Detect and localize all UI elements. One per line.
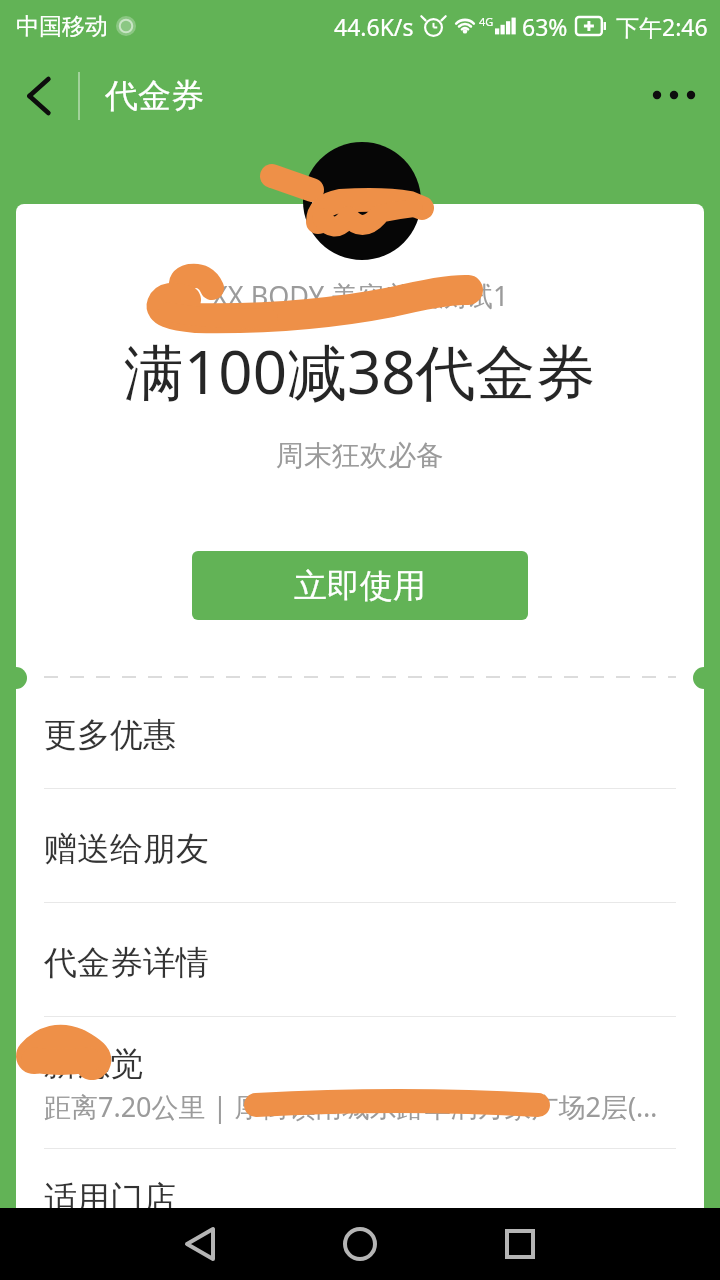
button[interactable]: 更多优惠 bbox=[16, 675, 704, 788]
staticText: 立即使用 bbox=[294, 565, 426, 607]
button[interactable]: 代金券详情 bbox=[16, 903, 704, 1016]
staticText: 赠送给朋友 bbox=[44, 828, 209, 870]
staticText: 代金券详情 bbox=[44, 942, 209, 984]
button[interactable]: Back bbox=[140, 1208, 260, 1280]
staticText: 周末狂欢必备 bbox=[276, 438, 444, 473]
button[interactable]: 赠送给朋友 bbox=[16, 789, 704, 902]
button[interactable]: More options bbox=[628, 52, 720, 140]
staticText: M bbox=[310, 193, 331, 223]
staticText: 63% bbox=[522, 11, 568, 42]
staticText: 下午2:46 bbox=[616, 11, 708, 42]
staticText: 新感觉 bbox=[44, 1043, 143, 1085]
staticText: 代金券 bbox=[105, 75, 204, 117]
button[interactable]: 新感觉 bbox=[16, 1017, 704, 1148]
staticText: 4G bbox=[479, 14, 494, 29]
staticText: 44.6K/s bbox=[334, 11, 414, 42]
staticText: 更多优惠 bbox=[44, 714, 176, 756]
staticText: 满100减38代金券 bbox=[124, 330, 596, 412]
staticText: 距离7.20公里 | 厚街镇南城东路华润万家广场2层(东门边上) bbox=[44, 1088, 676, 1125]
staticText: 中国移动 bbox=[16, 12, 108, 41]
staticText: XX BODY 美容美发测试1 bbox=[212, 277, 509, 314]
button[interactable]: Home bbox=[300, 1208, 420, 1280]
button[interactable]: Back bbox=[0, 52, 78, 140]
button[interactable]: 立即使用 bbox=[192, 551, 528, 620]
staticText: 适用门店 bbox=[44, 1178, 176, 1208]
button[interactable]: 适用门店 bbox=[16, 1149, 704, 1208]
button[interactable]: Recents bbox=[460, 1208, 580, 1280]
